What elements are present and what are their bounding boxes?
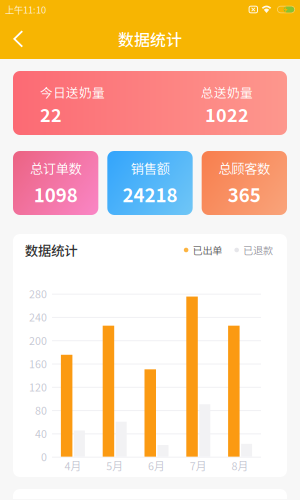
staticText: 1098 — [34, 181, 78, 208]
staticText: 7月 — [190, 458, 207, 473]
staticText: 总顾客数 — [218, 158, 270, 178]
staticText: 4月 — [64, 458, 81, 473]
staticText: 销售额 — [130, 158, 169, 178]
staticText: 8月 — [232, 458, 249, 473]
staticText: 5月 — [106, 458, 123, 473]
staticText: 数据统计 — [118, 27, 182, 51]
staticText: 6月 — [148, 458, 165, 473]
staticText: 数据统计 — [25, 240, 77, 260]
staticText: 已出单 — [192, 243, 222, 257]
staticText: 已退款 — [243, 243, 273, 257]
staticText: 365 — [228, 181, 261, 208]
staticText: 今日送奶量 — [40, 83, 105, 101]
staticText: 200 — [29, 332, 47, 348]
staticText: 24218 — [122, 181, 177, 208]
staticText: 160 — [29, 356, 47, 371]
staticText: 上午11:10 — [5, 3, 46, 16]
staticText: 80 — [35, 402, 47, 418]
staticText: 22 — [40, 101, 62, 127]
staticText: 40 — [35, 426, 47, 441]
staticText: 0 — [41, 449, 47, 464]
staticText: 280 — [29, 286, 47, 301]
staticText: 120 — [29, 379, 47, 394]
button[interactable]: 返回 — [0, 19, 37, 58]
staticText: 240 — [29, 309, 47, 325]
staticText: 总送奶量 — [201, 83, 253, 101]
staticText: 总订单数 — [30, 158, 82, 178]
staticText: 1022 — [205, 101, 249, 127]
